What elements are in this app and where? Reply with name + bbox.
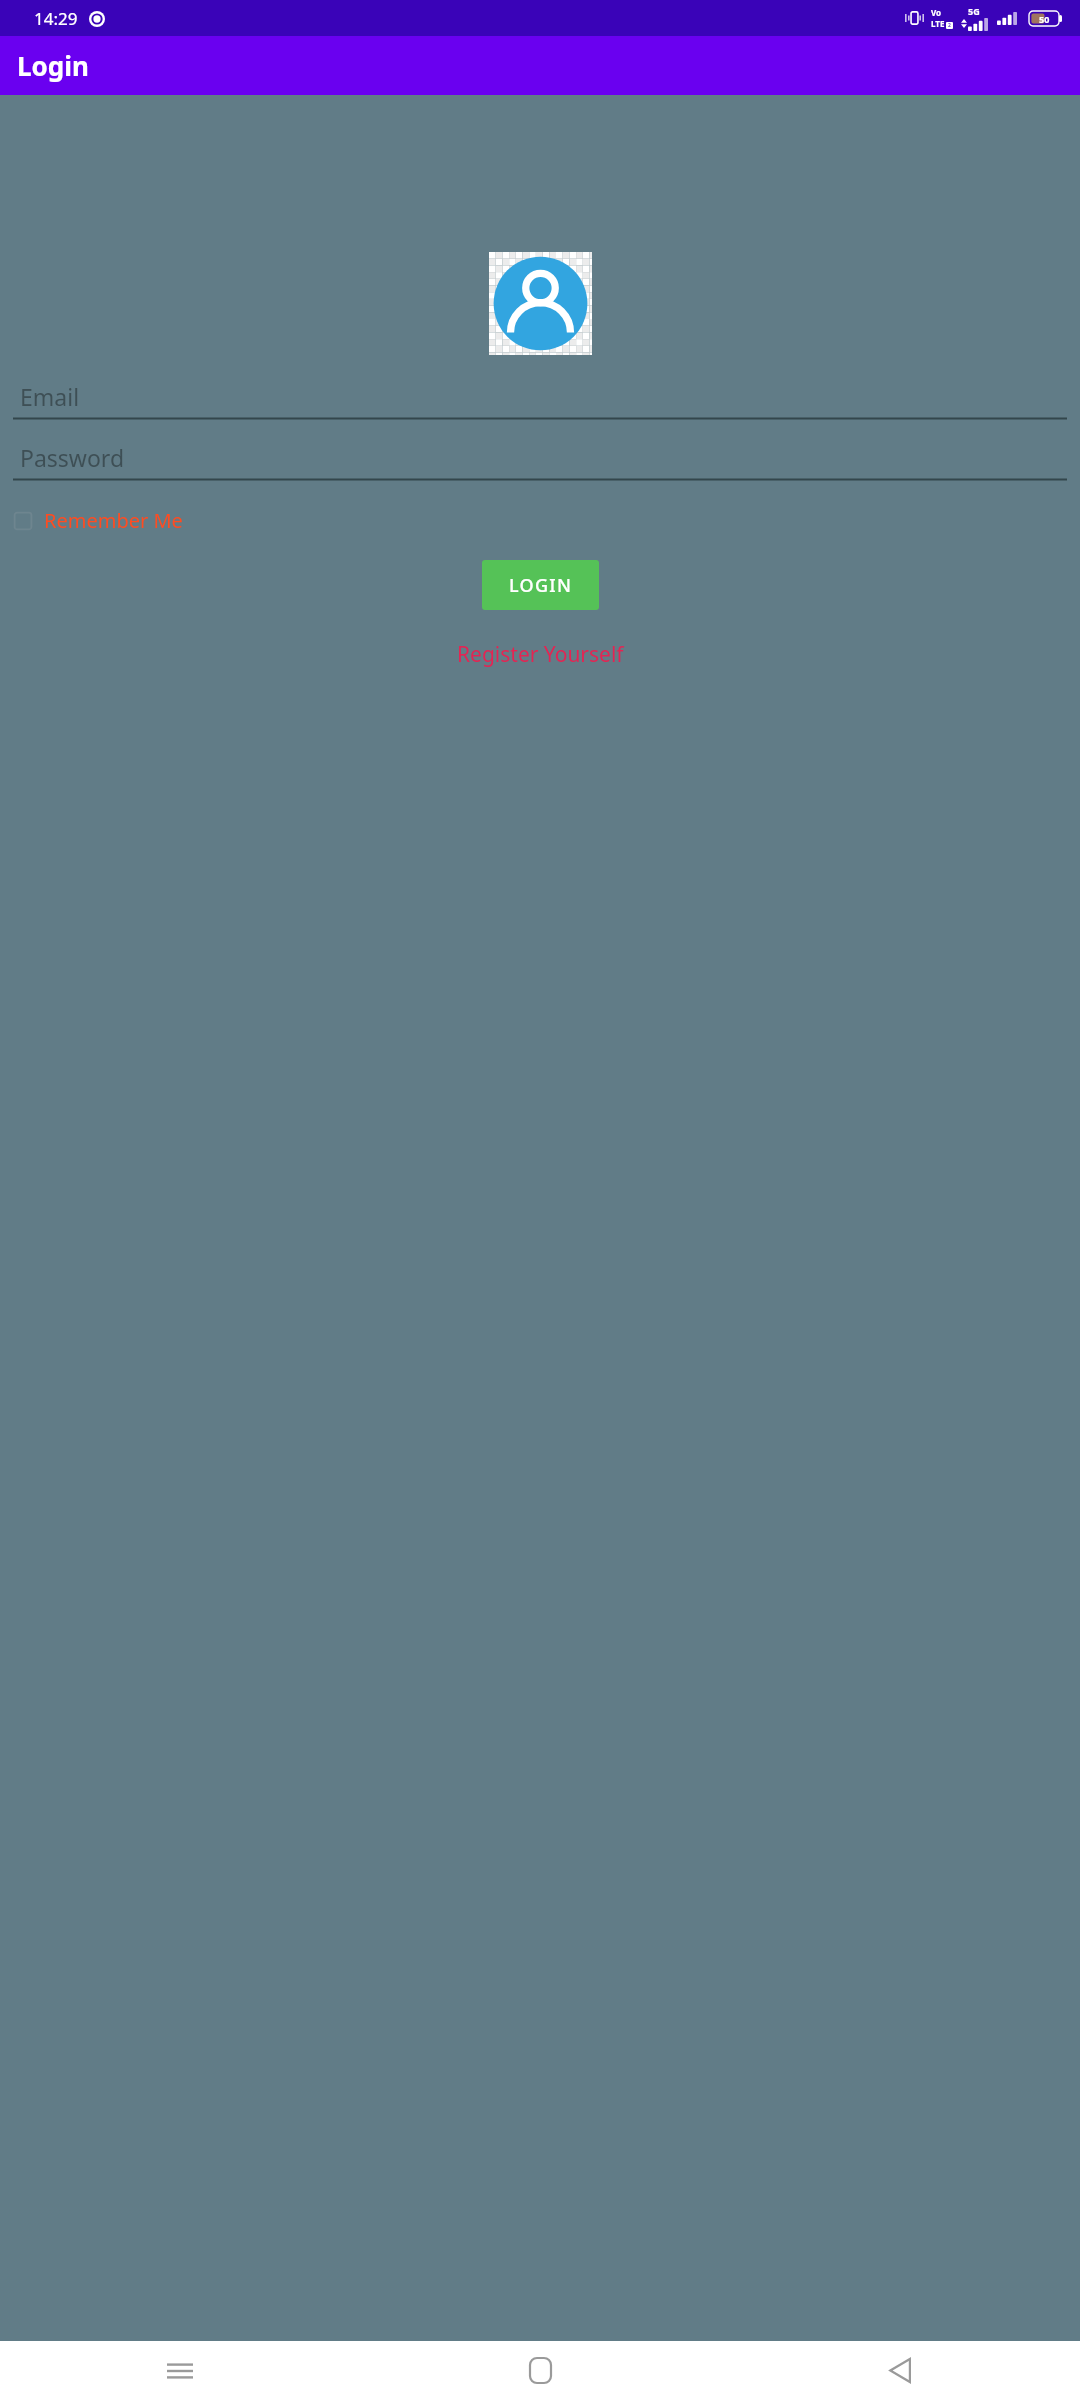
button[interactable]: Password: [13, 436, 1067, 481]
button[interactable]: Home: [360, 2341, 720, 2400]
staticText: LTE: [931, 18, 945, 29]
staticText: 50: [1039, 13, 1050, 25]
button[interactable]: Back: [720, 2341, 1080, 2400]
staticText: Remember Me: [44, 507, 183, 534]
button[interactable]: Register Yourself: [447, 636, 634, 673]
staticText: Password: [20, 442, 125, 473]
staticText: 14:29: [34, 7, 78, 30]
staticText: LOGIN: [509, 573, 573, 598]
button[interactable]: Recents: [0, 2341, 360, 2400]
button[interactable]: Remember Me: [13, 503, 1067, 538]
staticText: 5G: [968, 5, 980, 17]
button[interactable]: Email: [13, 375, 1067, 420]
staticText: 2: [948, 22, 951, 29]
staticText: Vo: [931, 7, 942, 18]
staticText: Login: [17, 48, 89, 83]
button[interactable]: LOGIN: [482, 560, 599, 610]
staticText: Register Yourself: [457, 640, 624, 669]
staticText: Email: [20, 381, 80, 412]
